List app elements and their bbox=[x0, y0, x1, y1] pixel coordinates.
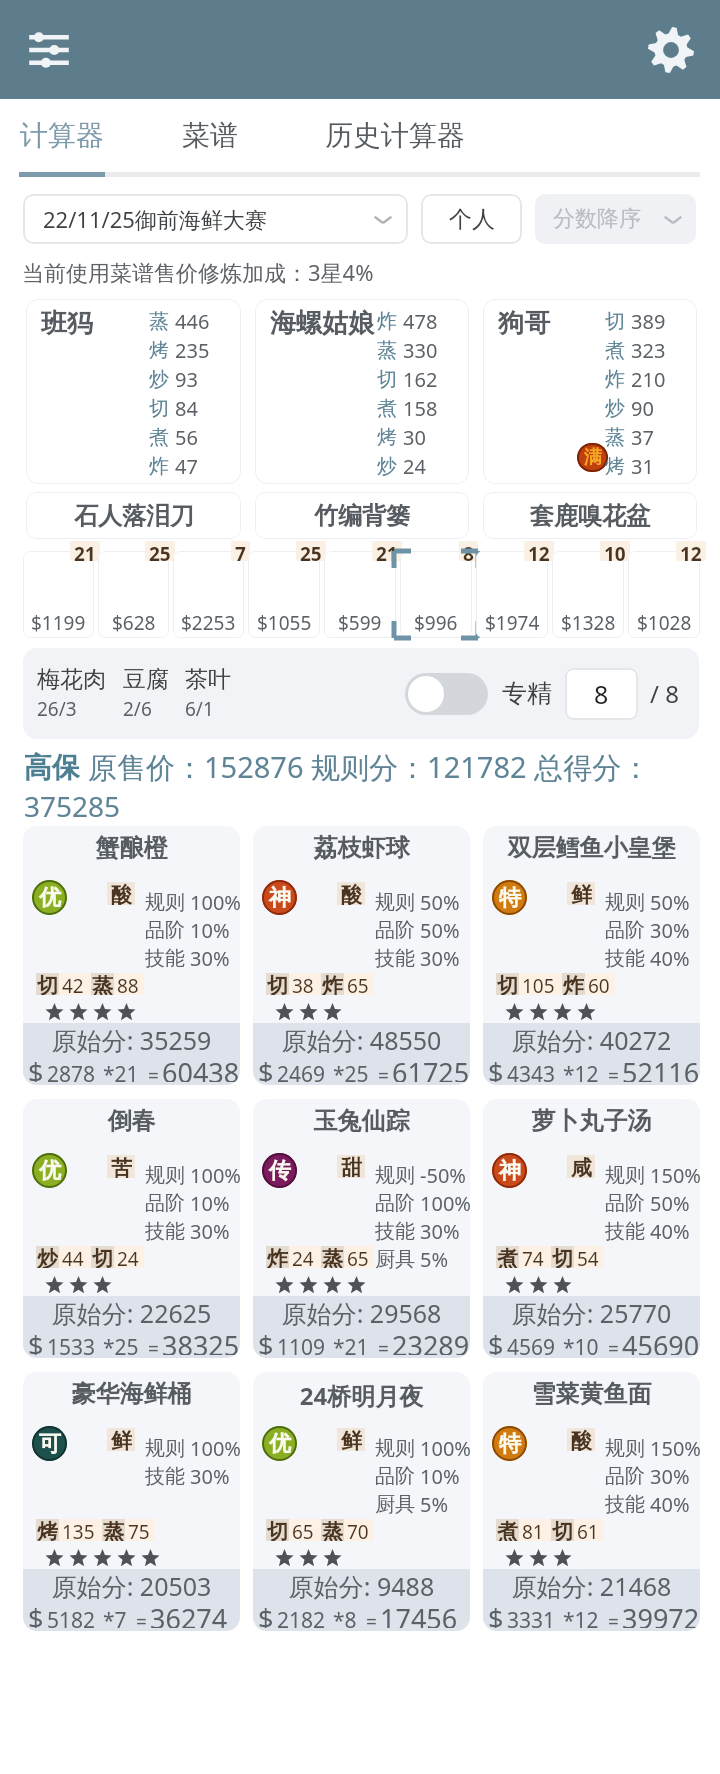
staticText: 原始分: 40272 bbox=[483, 1023, 700, 1057]
button[interactable]: 22/11/25御前海鲜大赛 bbox=[23, 194, 408, 244]
button[interactable]: 豪华海鲜桶 bbox=[23, 1372, 240, 1631]
staticText: 分数降序 bbox=[553, 205, 641, 233]
staticText: 规则 bbox=[145, 1163, 185, 1188]
staticText: 42 bbox=[62, 973, 84, 995]
staticText: 玉兔仙踪 bbox=[253, 1106, 470, 1136]
button[interactable]: 班犸 bbox=[26, 299, 241, 484]
staticText: 10% bbox=[190, 917, 230, 944]
button[interactable]: 萝卜丸子汤 bbox=[483, 1099, 700, 1358]
staticText: 375285 bbox=[24, 787, 121, 822]
staticText: 45690 bbox=[622, 1327, 700, 1355]
button[interactable]: 8 bbox=[565, 668, 638, 720]
button[interactable]: 倒春 bbox=[23, 1099, 240, 1358]
staticText: 规则 bbox=[605, 890, 645, 915]
staticText: = bbox=[366, 1609, 377, 1631]
staticText: $1055 bbox=[257, 610, 312, 636]
staticText: 煮 bbox=[497, 1246, 518, 1268]
staticText: $ bbox=[28, 1054, 44, 1082]
staticText: 23289 bbox=[392, 1327, 470, 1355]
button[interactable]: 雪菜黄鱼面 bbox=[483, 1372, 700, 1631]
button[interactable]: 分数降序 bbox=[535, 194, 696, 244]
staticText: 323 bbox=[631, 337, 666, 364]
button[interactable]: 个人 bbox=[421, 194, 522, 244]
button[interactable]: $1199 bbox=[23, 551, 94, 638]
staticText: 蒸 bbox=[377, 338, 397, 363]
staticText: 100% bbox=[420, 1190, 470, 1217]
staticText: 40% bbox=[650, 1218, 690, 1245]
staticText: 22/11/25御前海鲜大赛 bbox=[43, 204, 267, 234]
staticText: 100% bbox=[420, 1435, 470, 1462]
staticText: 原始分: 48550 bbox=[253, 1023, 470, 1057]
button[interactable]: $628 bbox=[98, 551, 169, 638]
staticText: 210 bbox=[631, 366, 666, 393]
staticText: 品阶 bbox=[145, 918, 185, 943]
staticText: 双层鳕鱼小皇堡 bbox=[483, 833, 700, 863]
button[interactable]: 24桥明月夜 bbox=[253, 1372, 470, 1631]
button[interactable]: 狗哥 bbox=[483, 299, 697, 484]
staticText: 10% bbox=[190, 1190, 230, 1217]
staticText: 优 bbox=[39, 1157, 61, 1185]
button[interactable]: 历史计算器 bbox=[325, 99, 467, 172]
staticText: 蟹酿橙 bbox=[23, 833, 240, 863]
staticText: 萝卜丸子汤 bbox=[483, 1106, 700, 1136]
button[interactable]: 套鹿嗅花盆 bbox=[483, 492, 697, 539]
staticText: 规则 bbox=[375, 1163, 415, 1188]
button[interactable]: $1028 bbox=[628, 551, 700, 638]
button[interactable]: 计算器 bbox=[20, 99, 104, 172]
staticText: 7 bbox=[235, 541, 246, 561]
button[interactable]: Toggle specialization bbox=[405, 673, 488, 715]
button[interactable]: Filter bbox=[14, 15, 84, 85]
staticText: 8 bbox=[463, 541, 474, 561]
button[interactable]: 菜谱 bbox=[182, 99, 240, 172]
button[interactable]: 双层鳕鱼小皇堡 bbox=[483, 826, 700, 1085]
staticText: 煮 bbox=[497, 1519, 518, 1541]
button[interactable]: 荔枝虾球 bbox=[253, 826, 470, 1085]
staticText: 炒 bbox=[377, 454, 397, 479]
button[interactable]: 玉兔仙踪 bbox=[253, 1099, 470, 1358]
staticText: 烤 bbox=[149, 338, 169, 363]
staticText: 100% bbox=[190, 1162, 240, 1189]
staticText: 81 bbox=[522, 1519, 544, 1541]
staticText: 品阶 bbox=[145, 1191, 185, 1216]
button[interactable]: 石人落泪刀 bbox=[26, 492, 241, 539]
staticText: 煮 bbox=[149, 425, 169, 450]
staticText: = bbox=[136, 1609, 147, 1631]
staticText: 135 bbox=[62, 1519, 95, 1541]
staticText: $ bbox=[258, 1600, 274, 1628]
staticText: 品阶 bbox=[605, 918, 645, 943]
button[interactable]: $1328 bbox=[552, 551, 624, 638]
staticText: 原始分: 25770 bbox=[483, 1296, 700, 1330]
button[interactable]: $1974 bbox=[476, 551, 548, 638]
button[interactable]: $2253 bbox=[173, 551, 244, 638]
staticText: 21 bbox=[74, 541, 96, 561]
staticText: 切 bbox=[92, 1246, 113, 1268]
button[interactable]: 蟹酿橙 bbox=[23, 826, 240, 1085]
staticText: 4343 bbox=[507, 1060, 556, 1085]
staticText: *10 bbox=[563, 1333, 599, 1358]
button[interactable]: 竹编背篓 bbox=[255, 492, 469, 539]
staticText: 神 bbox=[499, 1157, 521, 1185]
staticText: 技能 bbox=[605, 1219, 645, 1244]
staticText: 30 bbox=[403, 424, 426, 451]
staticText: 105 bbox=[522, 973, 555, 995]
staticText: -50% bbox=[420, 1162, 466, 1189]
staticText: 30% bbox=[190, 1218, 230, 1245]
staticText: 酸 bbox=[111, 882, 132, 905]
staticText: 蒸 bbox=[103, 1519, 124, 1541]
staticText: 厨具 bbox=[375, 1247, 415, 1272]
button[interactable]: $996 bbox=[400, 551, 472, 638]
staticText: 蒸 bbox=[149, 309, 169, 334]
staticText: *21 bbox=[103, 1060, 139, 1085]
staticText: 品阶 bbox=[605, 1191, 645, 1216]
staticText: 切 bbox=[377, 367, 397, 392]
button[interactable]: $599 bbox=[324, 551, 396, 638]
staticText: 50% bbox=[420, 917, 460, 944]
staticText: *12 bbox=[563, 1060, 599, 1085]
button[interactable]: Settings bbox=[636, 15, 706, 85]
button[interactable]: $1055 bbox=[248, 551, 320, 638]
staticText: 特 bbox=[499, 884, 521, 912]
button[interactable]: 海螺姑娘 bbox=[255, 299, 469, 484]
staticText: 规则 bbox=[145, 1436, 185, 1461]
staticText: 100% bbox=[190, 1435, 240, 1462]
staticText: 套鹿嗅花盆 bbox=[530, 501, 650, 531]
